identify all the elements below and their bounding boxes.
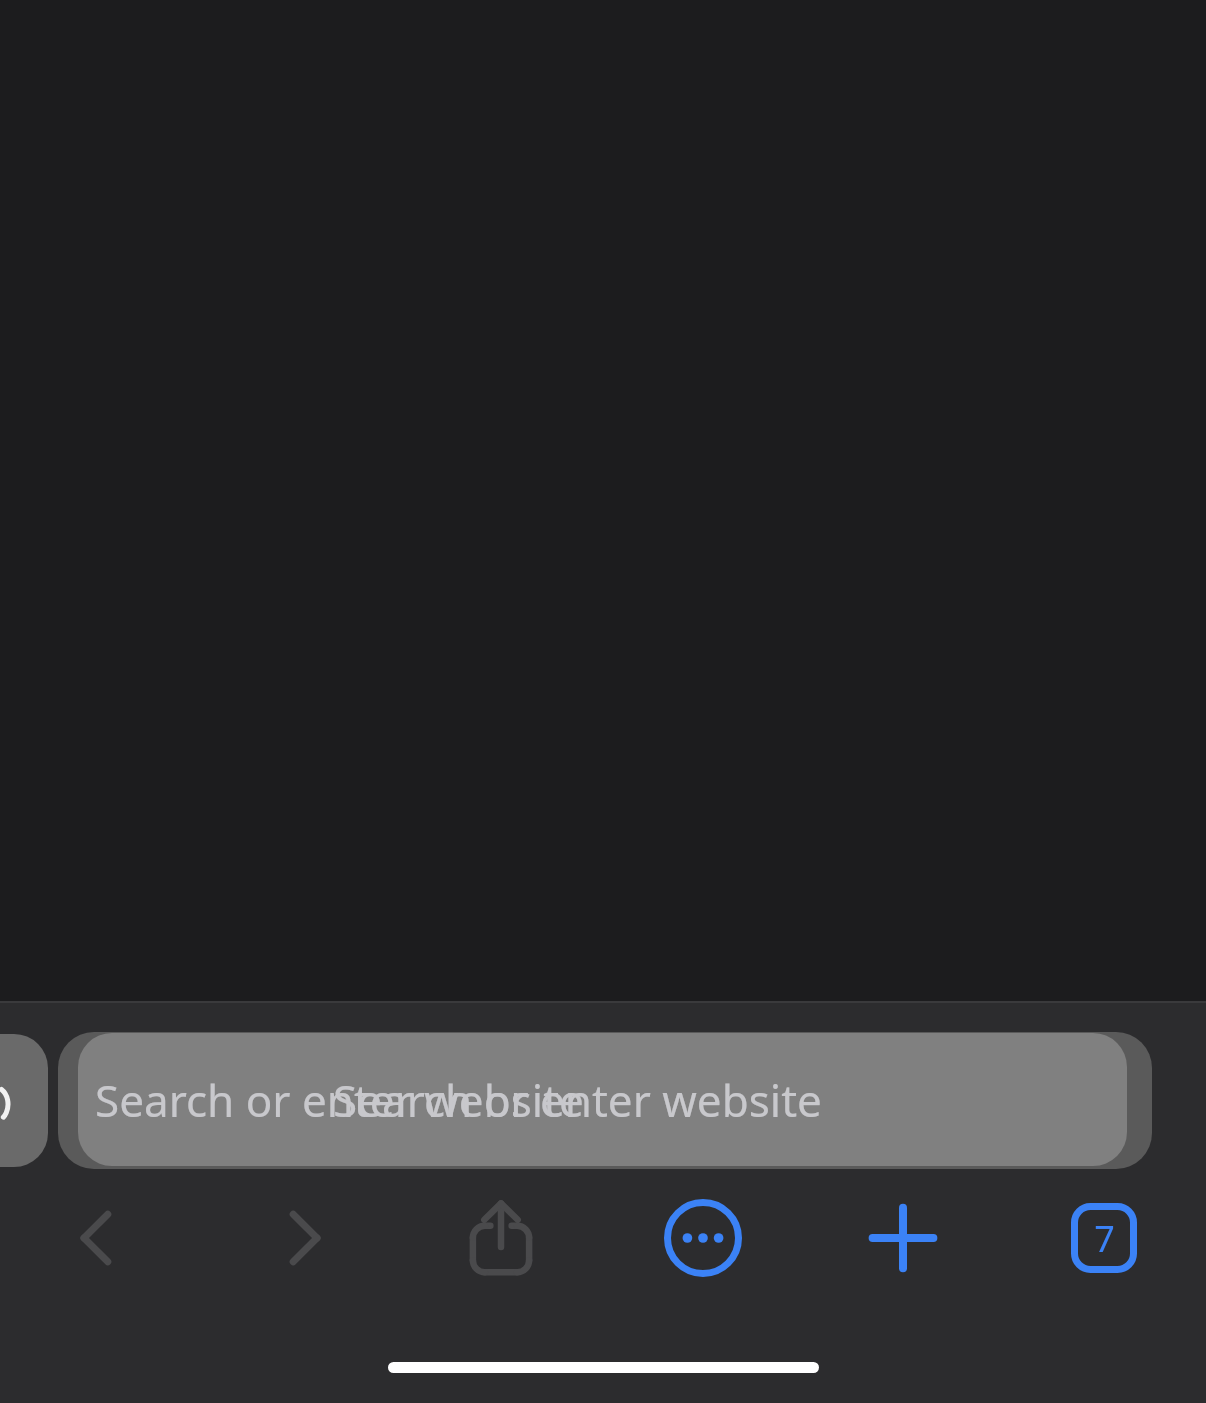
button[interactable]: Search or enter website <box>78 1033 1127 1166</box>
button[interactable]: More <box>643 1178 763 1298</box>
button[interactable]: Forward <box>243 1178 363 1298</box>
button[interactable]: Show tabs, 7 open <box>1044 1178 1164 1298</box>
button[interactable]: Back <box>38 1178 158 1298</box>
button[interactable]: New tab <box>843 1178 963 1298</box>
button[interactable]: Share <box>441 1178 561 1298</box>
staticText: 7 <box>1094 1214 1115 1263</box>
button[interactable]: Previous tab <box>0 1034 48 1167</box>
staticText: Search or enter website <box>333 1070 822 1130</box>
staticText: Search or enter website <box>95 1070 584 1130</box>
